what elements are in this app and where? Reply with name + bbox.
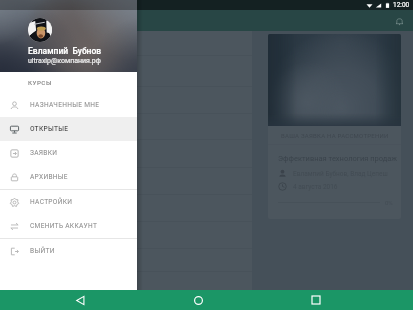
staticText: ОТКРЫТЫЕ <box>30 125 69 133</box>
staticText: АРХИВНЫЕ <box>30 173 68 181</box>
staticText: ЗАЯВКИ <box>30 149 58 157</box>
staticText: ВАША ЗАЯВКА НА РАССМОТРЕНИИ <box>281 132 389 139</box>
staticText: КУРСЫ <box>28 79 52 86</box>
staticText: Евлампий Бубнов <box>28 46 102 56</box>
staticText: ВЫЙТИ <box>30 247 55 255</box>
button[interactable]: ЗАЯВКИ <box>0 141 137 165</box>
button[interactable]: ОТКРЫТЫЕ <box>0 117 137 141</box>
button[interactable]: СМЕНИТЬ АККАУНТ <box>0 214 137 238</box>
button[interactable]: Notifications <box>390 12 408 30</box>
staticText: НАЗНАЧЕННЫЕ МНЕ <box>30 101 100 109</box>
button[interactable]: Back <box>70 290 90 310</box>
staticText: ultraxip@компания.рф <box>28 57 101 65</box>
staticText: НАСТРОЙКИ <box>30 198 73 206</box>
button[interactable]: ВЫЙТИ <box>0 239 137 263</box>
staticText: Эффективная технология продаж <box>278 154 398 163</box>
button[interactable]: НАСТРОЙКИ <box>0 190 137 214</box>
staticText: Евлампий Бубнов, Влад Цепеш <box>293 170 388 178</box>
button[interactable]: НАЗНАЧЕННЫЕ МНЕ <box>0 93 137 117</box>
button[interactable]: Home <box>188 290 208 310</box>
button[interactable]: Profile photo <box>28 18 52 42</box>
button[interactable]: АРХИВНЫЕ <box>0 165 137 189</box>
staticText: 12:00 <box>393 1 410 9</box>
button[interactable]: ВАША ЗАЯВКА НА РАССМОТРЕНИИ <box>268 34 401 219</box>
staticText: СОДЕРЖАНИЕ <box>44 16 108 25</box>
staticText: СМЕНИТЬ АККАУНТ <box>30 222 98 230</box>
button[interactable]: Recent apps <box>306 290 326 310</box>
